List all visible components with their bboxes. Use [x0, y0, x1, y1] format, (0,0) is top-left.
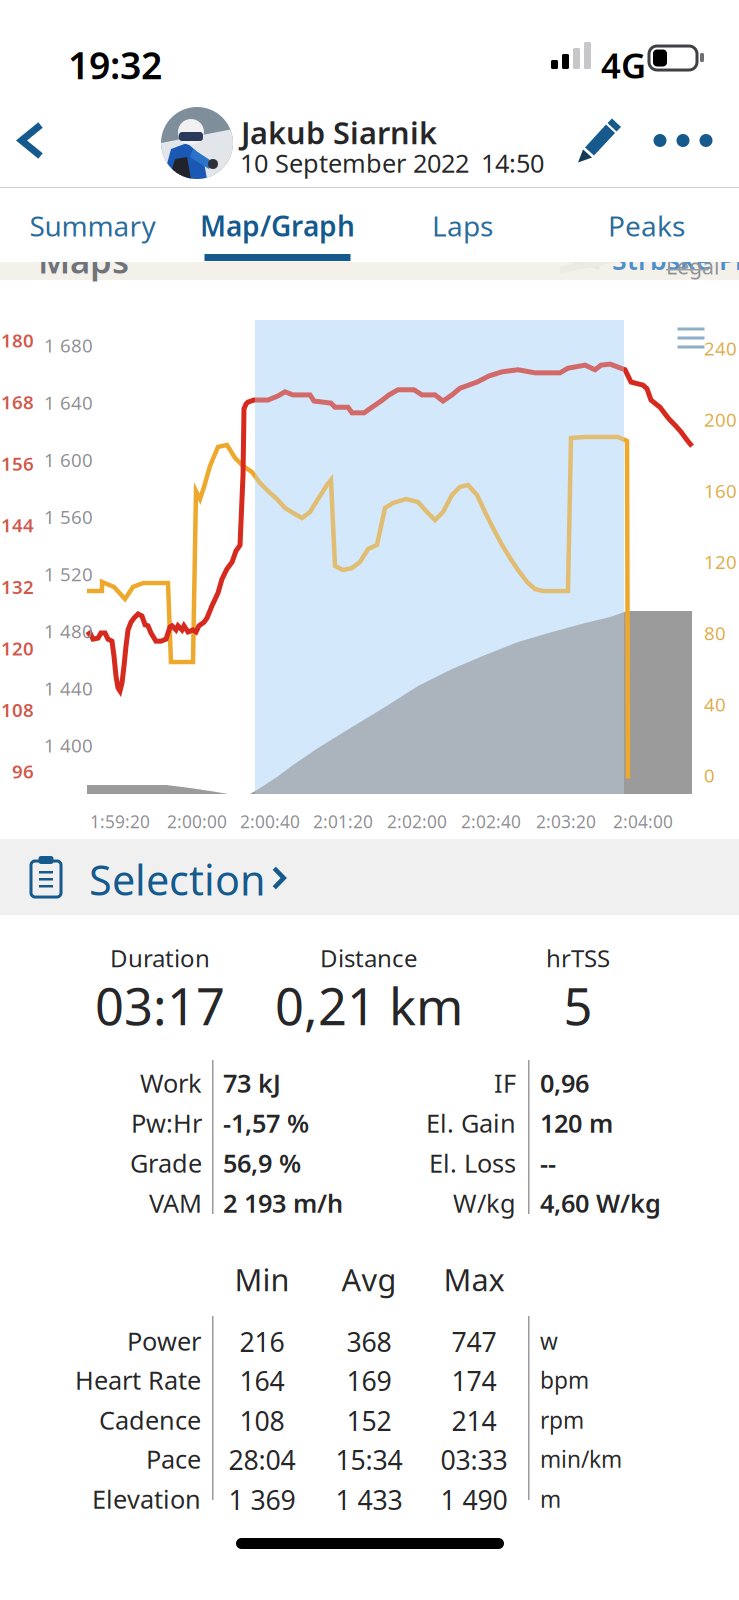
- button[interactable]: Back: [0, 94, 62, 187]
- staticText: 144: [1, 513, 34, 537]
- staticText: 1 440: [44, 676, 93, 701]
- staticText: IF: [494, 1066, 516, 1100]
- staticText: 168: [1, 389, 34, 414]
- staticText: 1 640: [44, 390, 93, 415]
- staticText: 28:04: [228, 1442, 295, 1477]
- staticText: 14:50: [481, 146, 544, 180]
- staticText: 1 520: [44, 561, 93, 586]
- staticText: Summary: [29, 207, 155, 244]
- staticText: m: [540, 1484, 561, 1514]
- staticText: 1 600: [44, 447, 93, 472]
- staticText: 1 680: [44, 333, 93, 358]
- staticText: 132: [1, 574, 34, 599]
- staticText: Duration: [110, 942, 210, 974]
- staticText: Work: [140, 1066, 202, 1100]
- staticText: 2:03:20: [536, 810, 596, 833]
- staticText: Legal: [666, 252, 720, 280]
- staticText: 214: [451, 1403, 496, 1438]
- staticText: bpm: [540, 1365, 589, 1395]
- staticText: 200: [704, 407, 737, 432]
- staticText: 1 480: [44, 619, 93, 643]
- staticText: Map/Graph: [200, 207, 355, 244]
- staticText: 108: [1, 697, 34, 722]
- staticText: 180: [1, 328, 34, 353]
- staticText: 19:32: [68, 40, 162, 90]
- staticText: 174: [451, 1363, 496, 1398]
- staticText: Power: [127, 1324, 201, 1358]
- staticText: Jakub Siarnik: [241, 112, 437, 153]
- staticText: 03:17: [95, 972, 225, 1039]
- staticText: 108: [239, 1403, 284, 1438]
- staticText: rpm: [540, 1405, 584, 1435]
- staticText: 169: [346, 1363, 391, 1398]
- button[interactable]: Edit: [564, 94, 636, 187]
- staticText: 0,96: [540, 1066, 589, 1100]
- staticText: Max: [443, 1259, 504, 1300]
- staticText: 120: [1, 636, 34, 661]
- staticText: 73 kJ: [223, 1066, 281, 1100]
- staticText: min/km: [540, 1444, 622, 1474]
- staticText: Cadence: [99, 1403, 201, 1437]
- button[interactable]: Selection: [0, 839, 739, 915]
- staticText: El. Gain: [426, 1106, 516, 1140]
- staticText: Elevation: [92, 1482, 201, 1516]
- staticText: 216: [239, 1324, 284, 1359]
- staticText: --: [540, 1146, 556, 1180]
- staticText: 1:59:20: [90, 810, 150, 833]
- staticText: 2:00:00: [167, 810, 227, 833]
- staticText: 56,9 %: [223, 1146, 301, 1180]
- staticText: 80: [704, 621, 726, 645]
- staticText: Grade: [130, 1146, 202, 1180]
- staticText: Pw:Hr: [131, 1106, 202, 1140]
- button[interactable]: Peaks: [554, 188, 739, 262]
- staticText: hrTSS: [546, 942, 610, 974]
- staticText: 5: [563, 972, 592, 1039]
- staticText: Laps: [432, 207, 493, 244]
- staticText: 120: [704, 549, 737, 574]
- staticText: Strbske Ples: [612, 242, 739, 277]
- staticText: 160: [704, 478, 737, 503]
- staticText: 1 560: [44, 504, 93, 529]
- staticText: 2:04:00: [613, 810, 673, 833]
- staticText: 368: [346, 1324, 391, 1359]
- staticText: 164: [239, 1363, 284, 1398]
- staticText: 2 193 m/h: [223, 1186, 343, 1220]
- staticText: 40: [704, 692, 726, 717]
- button[interactable]: Map/Graph: [185, 188, 370, 262]
- button[interactable]: More options: [643, 94, 723, 187]
- staticText: -1,57 %: [223, 1106, 309, 1140]
- staticText: Selection: [89, 852, 266, 907]
- staticText: 152: [346, 1403, 391, 1438]
- staticText: Avg: [341, 1259, 396, 1300]
- staticText: 0,21 km: [275, 972, 463, 1039]
- staticText: 96: [12, 759, 34, 784]
- staticText: 1 400: [44, 733, 93, 758]
- staticText: VAM: [149, 1186, 202, 1220]
- staticText: 1 433: [335, 1482, 402, 1517]
- staticText: 10 September 2022: [240, 146, 469, 180]
- staticText: Maps: [38, 237, 129, 283]
- button[interactable]: Summary: [0, 188, 185, 262]
- button[interactable]: Chart options: [671, 318, 711, 358]
- staticText: 2:00:40: [240, 810, 300, 833]
- staticText: 4G: [601, 42, 646, 88]
- staticText: El. Loss: [429, 1146, 516, 1180]
- staticText: 2:02:00: [387, 810, 447, 833]
- staticText: w: [540, 1326, 558, 1356]
- staticText: 1 490: [440, 1482, 507, 1517]
- staticText: 4,60 W/kg: [540, 1186, 661, 1220]
- staticText: Distance: [320, 942, 418, 974]
- staticText: 120 m: [540, 1106, 613, 1140]
- staticText: 747: [451, 1324, 496, 1359]
- staticText: Min: [234, 1259, 289, 1300]
- staticText: W/kg: [453, 1186, 516, 1220]
- staticText: 1 369: [228, 1482, 295, 1517]
- staticText: Peaks: [608, 207, 685, 244]
- staticText: 0: [704, 763, 715, 788]
- staticText: 240: [704, 336, 737, 361]
- staticText: 2:01:20: [313, 810, 373, 833]
- staticText: Heart Rate: [75, 1363, 201, 1397]
- button[interactable]: Laps: [370, 188, 555, 262]
- button[interactable]: Athlete profile: [161, 107, 233, 179]
- staticText: 156: [1, 451, 34, 476]
